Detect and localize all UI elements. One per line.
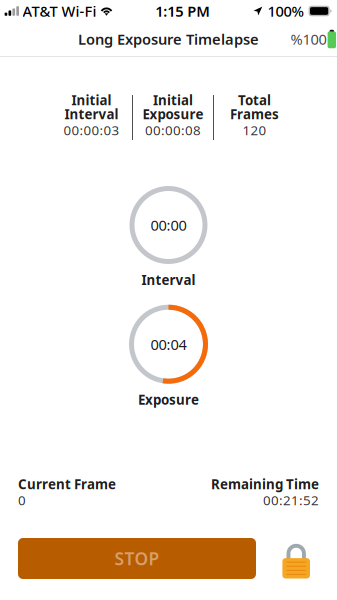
- staticText: Current Frame: [18, 475, 116, 493]
- staticText: Long Exposure Timelapse: [78, 29, 259, 49]
- staticText: 00:04: [150, 334, 186, 354]
- button[interactable]: STOP: [18, 538, 256, 579]
- staticText: Initial: [153, 91, 193, 109]
- staticText: 1:15 PM: [155, 1, 210, 21]
- staticText: Exposure: [142, 105, 203, 123]
- staticText: STOP: [114, 547, 159, 570]
- staticText: Remaining Time: [211, 475, 319, 493]
- staticText: Interval: [65, 105, 119, 123]
- staticText: Exposure: [138, 391, 199, 408]
- staticText: %100: [291, 29, 327, 49]
- staticText: 00:21:52: [263, 491, 319, 509]
- button[interactable]: Lock: [282, 538, 310, 578]
- staticText: AT&T Wi-Fi: [23, 1, 97, 21]
- staticText: 00:00:03: [64, 121, 120, 139]
- staticText: 120: [242, 121, 266, 139]
- staticText: 00:00: [150, 215, 186, 235]
- staticText: 0: [18, 491, 26, 509]
- staticText: Frames: [230, 105, 279, 123]
- staticText: Interval: [141, 271, 195, 289]
- staticText: Initial: [72, 91, 112, 109]
- staticText: 00:00:08: [145, 121, 201, 139]
- staticText: Total: [238, 91, 271, 109]
- staticText: 100%: [268, 1, 304, 21]
